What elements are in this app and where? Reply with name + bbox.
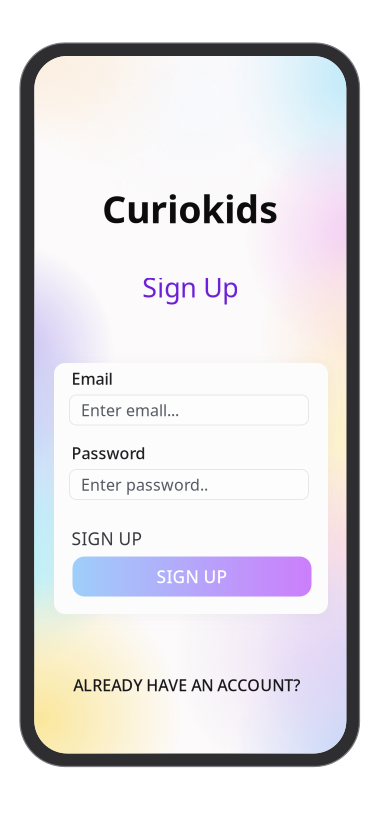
button[interactable]: SIGN UP <box>72 556 311 596</box>
staticText: ALREADY HAVE AN ACCOUNT? <box>73 674 300 696</box>
staticText: SIGN UP <box>71 527 141 550</box>
staticText: Sign Up <box>142 269 238 305</box>
staticText: Enter password.. <box>81 474 208 495</box>
staticText: Curiokids <box>102 184 278 234</box>
staticText: SIGN UP <box>156 565 227 588</box>
staticText: Email <box>71 368 112 389</box>
button[interactable]: Sign Up <box>34 269 346 305</box>
button[interactable]: ALREADY HAVE AN ACCOUNT? <box>31 674 343 696</box>
staticText: Password <box>71 442 145 464</box>
staticText: Enter emall... <box>81 399 179 421</box>
